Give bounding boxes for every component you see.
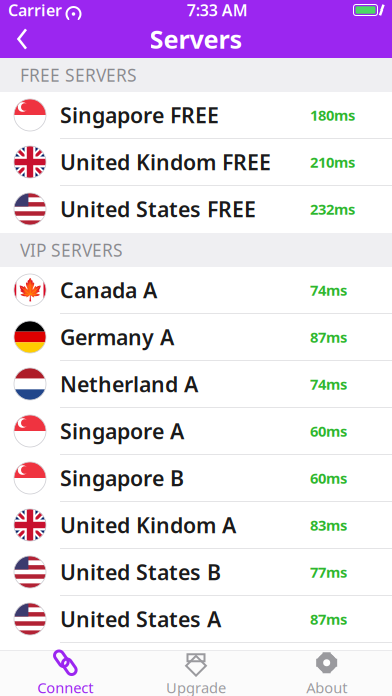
staticText: 210ms [310, 152, 355, 172]
staticText: Germany A [60, 323, 174, 351]
button[interactable]: United States A [0, 596, 392, 643]
button[interactable]: United States FREE [0, 186, 392, 233]
staticText: United States FREE [60, 195, 256, 223]
button[interactable]: Singapore B [0, 455, 392, 502]
staticText: Carrier [8, 0, 62, 21]
button[interactable]: Connect [0, 650, 131, 696]
staticText: 60ms [310, 421, 347, 441]
staticText: United States A [60, 605, 221, 633]
staticText: FREE SERVERS [20, 63, 137, 86]
staticText: Canada A [60, 276, 157, 304]
button[interactable]: United States B [0, 549, 392, 596]
staticText: United Kindom A [60, 511, 236, 539]
button[interactable]: Singapore A [0, 408, 392, 455]
staticText: United Kindom FREE [60, 148, 271, 176]
staticText: 7:33 AM [187, 0, 248, 21]
staticText: 232ms [310, 199, 355, 219]
button[interactable]: United Kindom A [0, 502, 392, 549]
staticText: 74ms [310, 374, 347, 394]
staticText: Upgrade [166, 678, 226, 696]
staticText: 180ms [310, 105, 355, 125]
staticText: 87ms [310, 327, 347, 347]
staticText: Singapore A [60, 417, 184, 445]
staticText: 87ms [310, 609, 347, 629]
staticText: About [306, 678, 347, 696]
button[interactable]: United Kindom FREE [0, 139, 392, 186]
button[interactable]: Netherland A [0, 361, 392, 408]
staticText: 60ms [310, 468, 347, 488]
staticText: United States B [60, 558, 221, 586]
button[interactable]: 🍁 [0, 267, 392, 314]
staticText: Servers [149, 22, 242, 56]
button[interactable]: Germany A [0, 314, 392, 361]
button[interactable]: Singapore FREE [0, 92, 392, 139]
staticText: VIP SERVERS [20, 238, 123, 261]
staticText: 🍁 [16, 278, 43, 302]
staticText: 83ms [310, 515, 347, 535]
staticText: Connect [37, 678, 93, 696]
staticText: Singapore FREE [60, 101, 219, 129]
staticText: 74ms [310, 280, 347, 300]
staticText: Singapore B [60, 464, 184, 492]
staticText: Netherland A [60, 370, 198, 398]
button[interactable]: Back [0, 20, 44, 58]
staticText: 77ms [310, 562, 347, 582]
button[interactable]: Upgrade [131, 650, 261, 696]
button[interactable]: About [261, 650, 392, 696]
